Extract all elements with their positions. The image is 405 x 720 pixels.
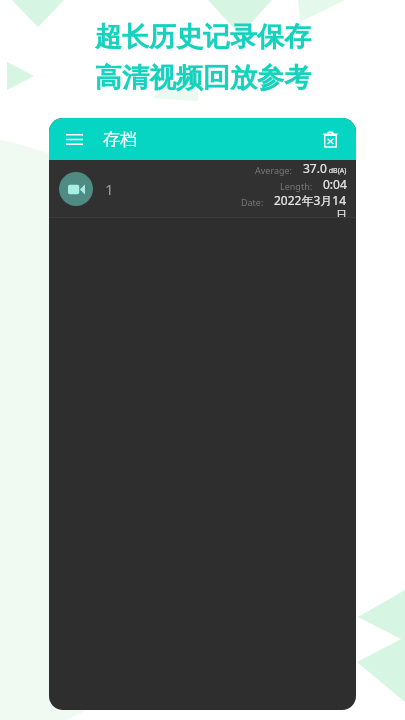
staticText: 高清视频回放参考	[95, 61, 311, 95]
staticText: 存档	[103, 129, 137, 150]
button[interactable]: Menu	[60, 125, 88, 153]
staticText: dB(A)	[327, 166, 347, 176]
button[interactable]: 1	[49, 160, 356, 217]
staticText: 日	[336, 208, 347, 217]
staticText: 1	[105, 179, 114, 199]
staticText: Date:	[241, 196, 264, 208]
staticText: 37.0	[303, 160, 327, 176]
staticText: Length:	[280, 180, 313, 192]
button[interactable]: Delete all	[315, 124, 345, 154]
staticText: 0:04	[323, 176, 347, 192]
staticText: 2022年3月14	[274, 192, 347, 208]
staticText: Average:	[255, 164, 293, 176]
staticText: 超长历史记录保存	[95, 20, 311, 54]
